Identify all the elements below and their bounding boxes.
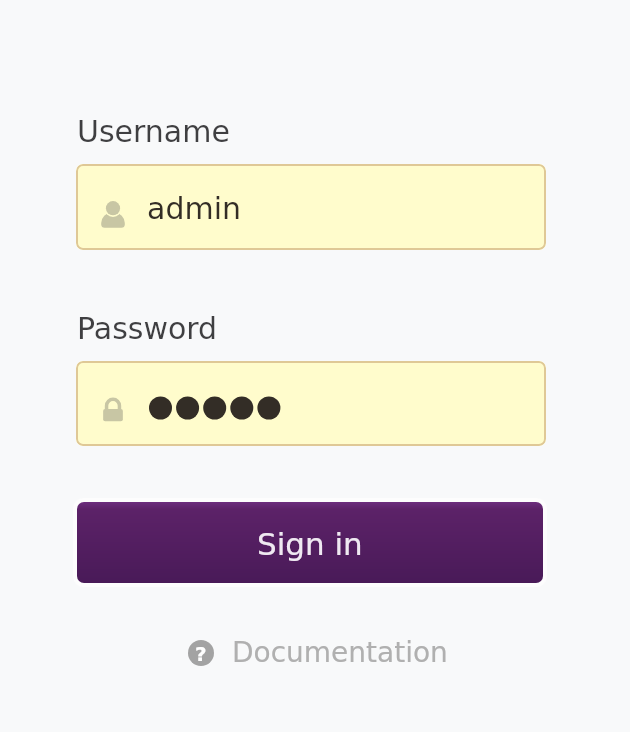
button[interactable]: Sign in <box>77 502 543 583</box>
other: Password <box>103 397 123 422</box>
other: User name <box>101 201 125 228</box>
staticText: Documentation <box>232 636 448 669</box>
staticText: ? <box>195 642 207 665</box>
staticText: Password <box>77 311 218 346</box>
staticText: admin <box>147 191 241 226</box>
other: Documentation help <box>188 640 214 666</box>
staticText: Sign in <box>257 526 363 562</box>
button[interactable]: Password <box>76 361 546 446</box>
button[interactable]: User name <box>76 164 546 250</box>
staticText: Username <box>77 114 230 149</box>
button[interactable]: Documentation help <box>3 636 630 669</box>
